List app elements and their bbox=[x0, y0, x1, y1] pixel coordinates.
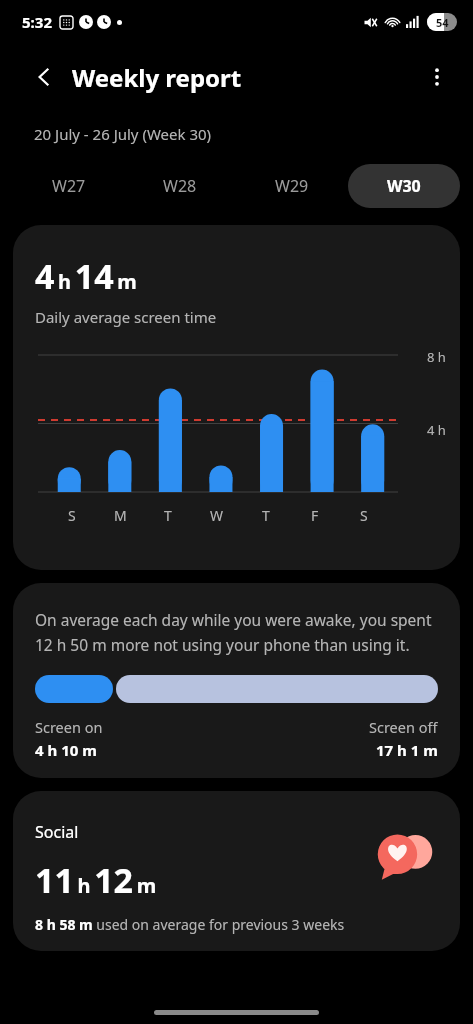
button[interactable]: 4 h 14 m bbox=[13, 225, 460, 570]
staticText: On average each day while you were awake… bbox=[35, 609, 432, 630]
staticText: 54 bbox=[436, 15, 449, 30]
staticText: W27 bbox=[52, 175, 86, 197]
button[interactable]: W28 bbox=[124, 164, 236, 208]
button[interactable]: W29 bbox=[236, 164, 348, 208]
staticText: W30 bbox=[387, 175, 421, 197]
staticText: 20 July - 26 July (Week 30) bbox=[34, 124, 212, 144]
staticText: F bbox=[311, 506, 319, 525]
staticText: S bbox=[68, 506, 76, 525]
staticText: W bbox=[210, 506, 224, 525]
staticText: Social bbox=[35, 821, 79, 843]
staticText: S bbox=[360, 506, 368, 525]
staticText: Screen off bbox=[369, 717, 438, 737]
staticText: W29 bbox=[275, 175, 309, 197]
button[interactable]: Social bbox=[13, 791, 460, 951]
staticText: 8 h bbox=[427, 348, 446, 366]
staticText: 17 h 1 m bbox=[376, 740, 438, 760]
staticText: T bbox=[164, 506, 172, 525]
button[interactable]: More options bbox=[415, 55, 459, 99]
staticText: Screen on bbox=[35, 717, 103, 737]
button[interactable]: W27 bbox=[13, 164, 124, 208]
button[interactable]: Back bbox=[22, 55, 66, 99]
button[interactable]: W30 bbox=[348, 164, 460, 208]
staticText: 4 h 10 m bbox=[35, 740, 97, 760]
staticText: Daily average screen time bbox=[35, 307, 217, 327]
staticText: 4 h 14 m bbox=[35, 253, 137, 299]
staticText: W28 bbox=[163, 175, 197, 197]
staticText: 4 h bbox=[427, 421, 446, 439]
staticText: 8 h 58 m used on average for previous 3 … bbox=[35, 915, 345, 934]
staticText: M bbox=[114, 506, 127, 525]
staticText: 12 h 50 m more not using your phone than… bbox=[35, 634, 410, 655]
staticText: Weekly report bbox=[72, 61, 242, 94]
button[interactable]: On average each day while you were awake… bbox=[13, 583, 460, 778]
staticText: T bbox=[262, 506, 270, 525]
other: Social bbox=[376, 831, 434, 889]
staticText: 5:32 bbox=[22, 12, 52, 32]
staticText: 11 h 12 m bbox=[35, 857, 157, 903]
